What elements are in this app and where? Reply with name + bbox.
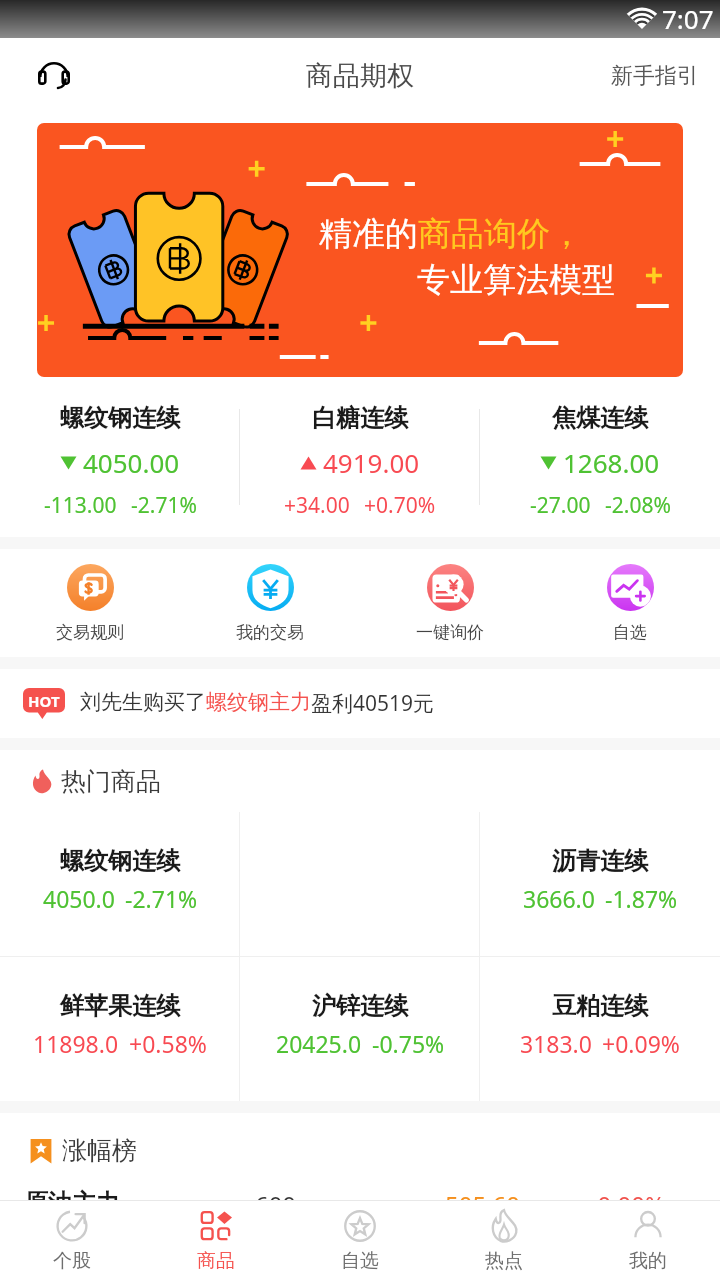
staticText: 螺纹钢连续 bbox=[60, 403, 180, 433]
staticText: 商品询价， bbox=[418, 213, 583, 255]
staticText: 我的 bbox=[629, 1249, 667, 1273]
staticText: 一键询价 bbox=[416, 622, 484, 643]
staticText: +0.58% bbox=[129, 1028, 207, 1059]
staticText: 11898.0 bbox=[33, 1028, 119, 1059]
staticText: -2.71% bbox=[125, 883, 198, 914]
button[interactable]: 自选 bbox=[540, 549, 720, 657]
staticText: 商品 bbox=[197, 1249, 235, 1273]
staticText: 精准的 bbox=[319, 213, 418, 255]
staticText: 豆粕连续 bbox=[552, 991, 648, 1021]
staticText: 我的交易 bbox=[236, 622, 304, 643]
staticText: +0.09% bbox=[602, 1028, 680, 1059]
staticText: 自选 bbox=[341, 1249, 379, 1273]
staticText: 新手指引 bbox=[611, 62, 699, 90]
button[interactable]: 沥青连续 bbox=[480, 812, 720, 956]
button[interactable]: HOT bbox=[0, 669, 720, 738]
staticText: -27.00 bbox=[530, 491, 591, 520]
button[interactable]: 我的交易 bbox=[180, 549, 360, 657]
staticText: 焦煤连续 bbox=[552, 403, 648, 433]
staticText: 505.60 bbox=[352, 1188, 520, 1200]
staticText: -0.75% bbox=[372, 1028, 445, 1059]
staticText: 白糖连续 bbox=[312, 403, 408, 433]
staticText: 600 bbox=[199, 1188, 352, 1200]
staticText: 7:07 bbox=[662, 1, 714, 36]
staticText: 原油主力 bbox=[24, 1188, 199, 1200]
button[interactable]: 白糖连续 bbox=[240, 385, 480, 537]
staticText: 螺纹钢连续 bbox=[60, 846, 180, 876]
button[interactable]: 精准的 bbox=[37, 123, 683, 377]
staticText: 涨幅榜 bbox=[62, 1135, 137, 1166]
staticText: 商品期权 bbox=[306, 59, 414, 93]
button[interactable]: 螺纹钢连续 bbox=[0, 812, 240, 956]
button[interactable]: 个股 bbox=[0, 1201, 144, 1280]
staticText: 鲜苹果连续 bbox=[60, 991, 180, 1021]
staticText: +0.70% bbox=[364, 491, 436, 520]
staticText: 沪锌连续 bbox=[312, 991, 408, 1021]
staticText: 交易规则 bbox=[56, 622, 124, 643]
button[interactable]: 鲜苹果连续 bbox=[0, 957, 240, 1101]
staticText: 个股 bbox=[53, 1249, 91, 1273]
staticText: 4919.00 bbox=[323, 445, 420, 480]
staticText: 20425.0 bbox=[276, 1028, 362, 1059]
staticText: 0.00% bbox=[520, 1188, 665, 1200]
button[interactable]: 豆粕连续 bbox=[480, 957, 720, 1101]
button[interactable]: 热点 bbox=[432, 1201, 576, 1280]
button[interactable]: 沪锌连续 bbox=[240, 957, 480, 1101]
staticText: 自选 bbox=[613, 622, 647, 643]
staticText: -113.00 bbox=[44, 491, 117, 520]
staticText: 沥青连续 bbox=[552, 846, 648, 876]
button[interactable]: 我的 bbox=[576, 1201, 720, 1280]
staticText: 4050.00 bbox=[83, 445, 180, 480]
button[interactable]: 商品 bbox=[144, 1201, 288, 1280]
staticText: -2.08% bbox=[605, 491, 671, 520]
button[interactable]: 一键询价 bbox=[360, 549, 540, 657]
staticText: 专业算法模型 bbox=[417, 259, 615, 301]
staticText: 1268.00 bbox=[563, 445, 660, 480]
button[interactable]: 焦煤连续 bbox=[480, 385, 720, 537]
staticText: 3183.0 bbox=[520, 1028, 592, 1059]
button[interactable]: 自选 bbox=[288, 1201, 432, 1280]
staticText: 3666.0 bbox=[523, 883, 595, 914]
staticText: -1.87% bbox=[605, 883, 678, 914]
button[interactable]: 螺纹钢连续 bbox=[0, 385, 240, 537]
staticText: 热点 bbox=[485, 1249, 523, 1273]
button[interactable]: Customer service bbox=[26, 48, 82, 104]
staticText: 盈利40519元 bbox=[311, 689, 435, 718]
button[interactable]: 交易规则 bbox=[0, 549, 180, 657]
button[interactable]: 新手指引 bbox=[597, 38, 720, 114]
staticText: 螺纹钢主力 bbox=[206, 689, 311, 715]
staticText: 4050.0 bbox=[43, 883, 115, 914]
staticText: HOT bbox=[28, 691, 60, 711]
staticText: +34.00 bbox=[284, 491, 350, 520]
staticText: 刘先生购买了 bbox=[80, 689, 206, 715]
staticText: -2.71% bbox=[131, 491, 197, 520]
staticText: 热门商品 bbox=[61, 766, 161, 797]
